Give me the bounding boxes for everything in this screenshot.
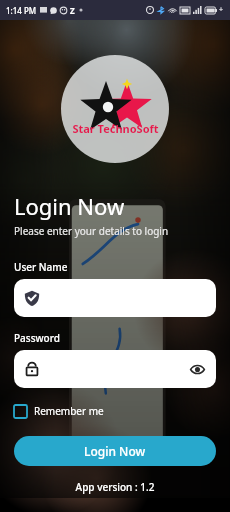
button[interactable]: User Name bbox=[14, 279, 216, 317]
staticText: User Name bbox=[14, 260, 68, 274]
staticText: Login Now bbox=[84, 443, 146, 459]
staticText: Please enter your details to login bbox=[14, 224, 169, 238]
button[interactable]: Password bbox=[14, 350, 216, 388]
staticText: 1:14 PM bbox=[6, 5, 37, 16]
button[interactable]: Login Now bbox=[14, 436, 216, 466]
button[interactable]: Show password bbox=[188, 360, 206, 378]
button[interactable]: Remember me bbox=[14, 402, 104, 420]
staticText: + bbox=[219, 5, 224, 15]
staticText: Password bbox=[14, 331, 60, 345]
staticText: App version : 1.2 bbox=[14, 480, 216, 494]
staticText: Remember me bbox=[34, 404, 104, 418]
staticText: Z bbox=[70, 5, 75, 16]
staticText: Star TechnoSoft bbox=[72, 121, 159, 136]
staticText: Login Now bbox=[14, 191, 125, 221]
